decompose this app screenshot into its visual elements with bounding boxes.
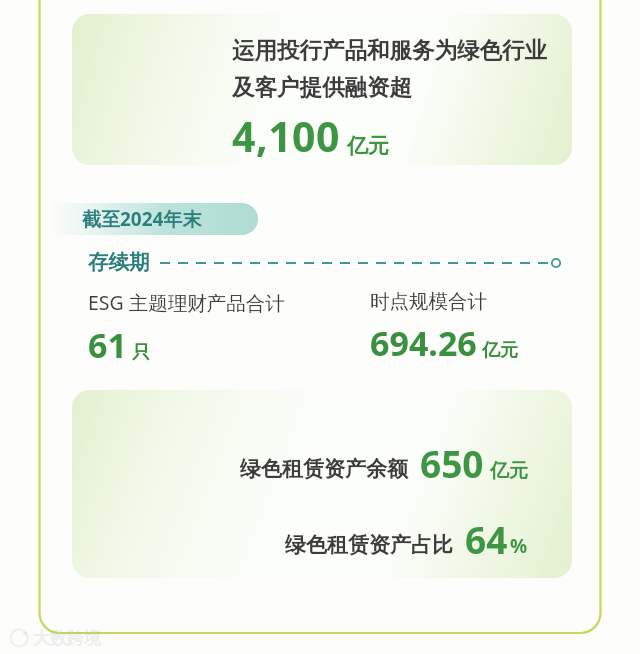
staticText: 4,100 <box>232 108 340 164</box>
staticText: 694.26 <box>370 320 477 366</box>
staticText: 650 <box>420 438 484 488</box>
staticText: 61 <box>88 322 127 368</box>
staticText: % <box>510 533 528 559</box>
button[interactable]: 截至2024年末 <box>50 203 258 235</box>
staticText: 绿色租赁资产余额 <box>240 456 408 482</box>
staticText: ESG 主题理财产品合计 <box>88 289 285 316</box>
staticText: 截至2024年末 <box>82 206 202 232</box>
staticText: 时点规模合计 <box>370 289 487 314</box>
staticText: 大数跨境 <box>33 628 101 649</box>
staticText: 亿元 <box>482 339 518 362</box>
staticText: 及客户提供融资超 <box>232 73 412 101</box>
staticText: 绿色租赁资产占比 <box>285 532 453 558</box>
staticText: 64 <box>465 514 508 564</box>
staticText: 只 <box>132 341 150 364</box>
button[interactable]: 绿色租赁资产余额 <box>72 390 572 578</box>
staticText: 亿元 <box>347 133 389 159</box>
staticText: 亿元 <box>490 459 528 483</box>
other: Watermark logo <box>8 627 101 649</box>
staticText: 运用投行产品和服务为绿色行业 <box>232 36 547 64</box>
staticText: 存续期 <box>88 249 150 275</box>
button[interactable]: 运用投行产品和服务为绿色行业 <box>72 14 572 165</box>
